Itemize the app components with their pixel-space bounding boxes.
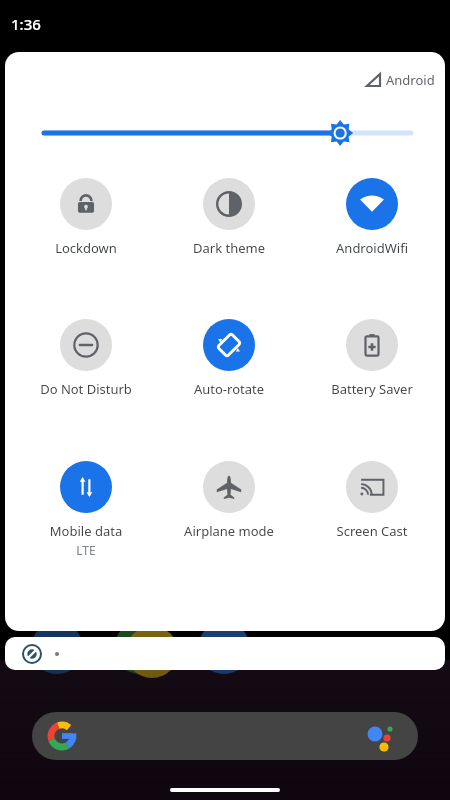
button[interactable]: Lockdown (21, 178, 151, 257)
button[interactable]: Screen Cast (307, 461, 437, 540)
button[interactable] (5, 637, 445, 670)
button[interactable]: Auto-rotate (164, 319, 294, 398)
button[interactable]: Brightness (44, 120, 411, 146)
button[interactable]: AndroidWifi (307, 178, 437, 257)
button[interactable]: Google Search (32, 712, 418, 760)
staticText: LTE (21, 542, 151, 558)
staticText: Android (386, 71, 435, 89)
button[interactable]: Airplane mode (164, 461, 294, 540)
staticText: 1:36 (11, 14, 41, 34)
button[interactable]: Mobile data (21, 461, 151, 558)
button[interactable]: Do Not Disturb (21, 319, 151, 398)
staticText: Screen Cast (307, 522, 437, 540)
staticText: AndroidWifi (307, 239, 437, 257)
button[interactable]: Dark theme (164, 178, 294, 257)
staticText: Dark theme (164, 239, 294, 257)
button[interactable]: Battery Saver (307, 319, 437, 398)
staticText: Do Not Disturb (21, 380, 151, 398)
staticText: Lockdown (21, 239, 151, 257)
staticText: Airplane mode (164, 522, 294, 540)
staticText: Auto-rotate (164, 380, 294, 398)
staticText: Mobile data (21, 522, 151, 540)
staticText: Battery Saver (307, 380, 437, 398)
